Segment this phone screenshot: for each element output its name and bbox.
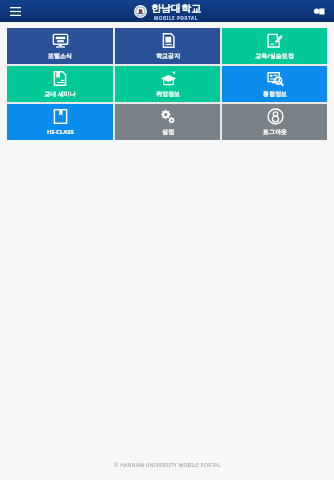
button[interactable]: 취업정보 [115,66,220,102]
staticText: MOBILE PORTAL [154,15,198,21]
staticText: 한남대학교 [151,2,201,15]
staticText: 통합정보 [263,90,287,98]
button[interactable]: 로그아웃 [222,104,327,140]
button[interactable]: 설정 [115,104,220,140]
staticText: 포털소식 [48,52,72,60]
button[interactable]: 통합정보 [222,66,327,102]
staticText: 취업정보 [156,90,180,98]
button[interactable]: HI-CLASS [7,104,113,140]
staticText: 학교공지 [156,52,180,60]
staticText: 교육/실습모집 [255,52,294,60]
button[interactable]: 학교공지 [115,28,220,64]
button[interactable]: 교내 세미나 [7,66,113,102]
button[interactable]: 교육/실습모집 [222,28,327,64]
staticText: HI-CLASS [47,128,74,136]
staticText: © HANNAM UNIVERSITY MOBILE PORTAL [114,462,221,469]
staticText: 교내 세미나 [44,90,76,98]
staticText: 설정 [162,128,174,136]
button[interactable]: 포털소식 [7,28,113,64]
button[interactable]: Menu [6,2,24,20]
button[interactable]: Account [310,2,328,20]
staticText: 로그아웃 [263,128,287,136]
